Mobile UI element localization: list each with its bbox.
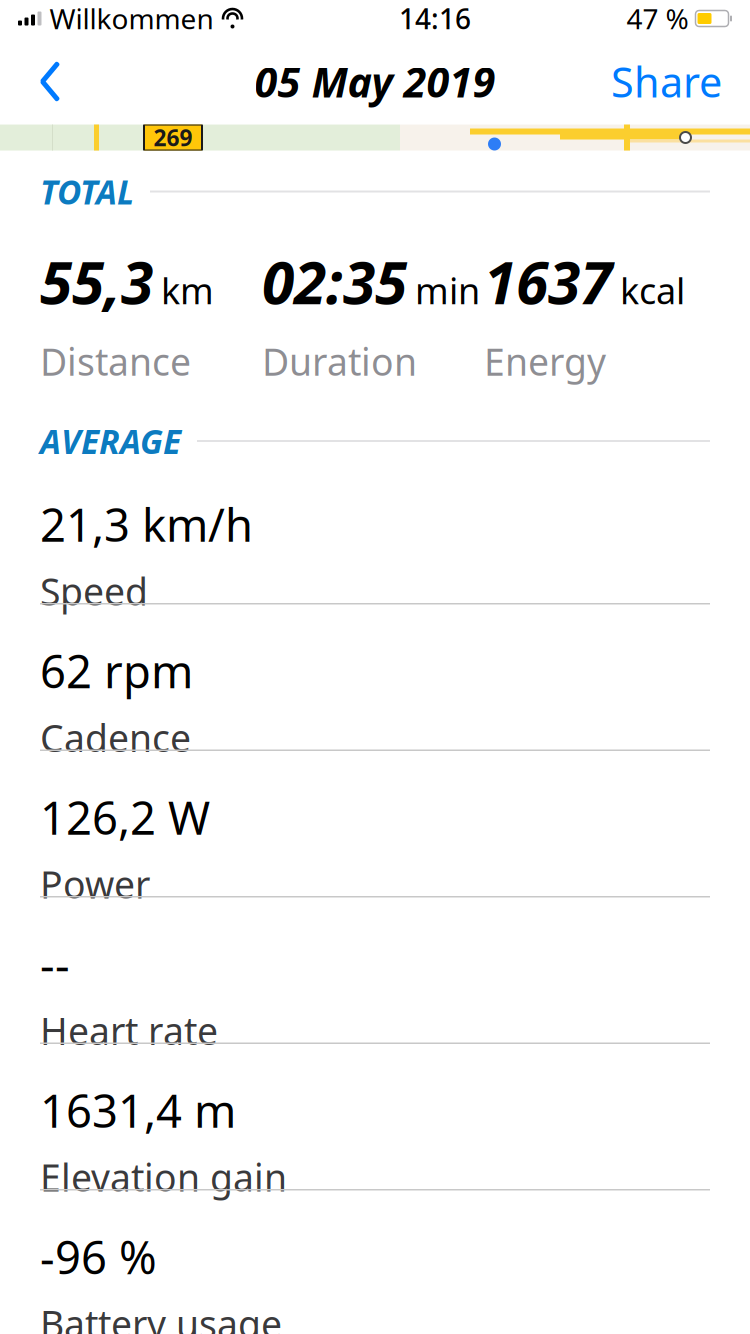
staticText: km bbox=[161, 266, 214, 314]
staticText: 1637 bbox=[484, 242, 612, 320]
staticText: kcal bbox=[620, 266, 685, 314]
staticText: Share bbox=[611, 54, 722, 109]
staticText: 47 % bbox=[626, 0, 688, 37]
staticText: Battery usage bbox=[40, 1299, 282, 1334]
button[interactable]: Share bbox=[601, 51, 732, 111]
staticText: -- bbox=[40, 933, 70, 994]
staticText: 14:16 bbox=[399, 0, 471, 37]
staticText: TOTAL bbox=[40, 169, 134, 214]
staticText: 05 May 2019 bbox=[254, 54, 495, 109]
staticText: Power bbox=[40, 859, 150, 909]
staticText: Heart rate bbox=[40, 1006, 218, 1055]
staticText: AVERAGE bbox=[40, 419, 181, 463]
staticText: Distance bbox=[40, 336, 191, 386]
staticText: Willkommen bbox=[49, 0, 213, 37]
staticText: 02:35 bbox=[262, 242, 407, 320]
staticText: Cadence bbox=[40, 713, 191, 762]
staticText: Duration bbox=[262, 336, 417, 386]
staticText: 1631,4 m bbox=[40, 1080, 236, 1140]
staticText: 21,3 km/h bbox=[40, 494, 253, 554]
staticText: Speed bbox=[40, 566, 148, 616]
staticText: min bbox=[415, 266, 480, 314]
staticText: 55,3 bbox=[40, 242, 153, 320]
staticText: 62 rpm bbox=[40, 640, 193, 701]
staticText: Elevation gain bbox=[40, 1152, 287, 1202]
staticText: -96 % bbox=[40, 1226, 157, 1287]
staticText: 269 bbox=[153, 122, 192, 153]
staticText: Energy bbox=[484, 336, 606, 386]
button[interactable]: Back bbox=[18, 51, 82, 111]
staticText: 126,2 W bbox=[40, 787, 210, 847]
